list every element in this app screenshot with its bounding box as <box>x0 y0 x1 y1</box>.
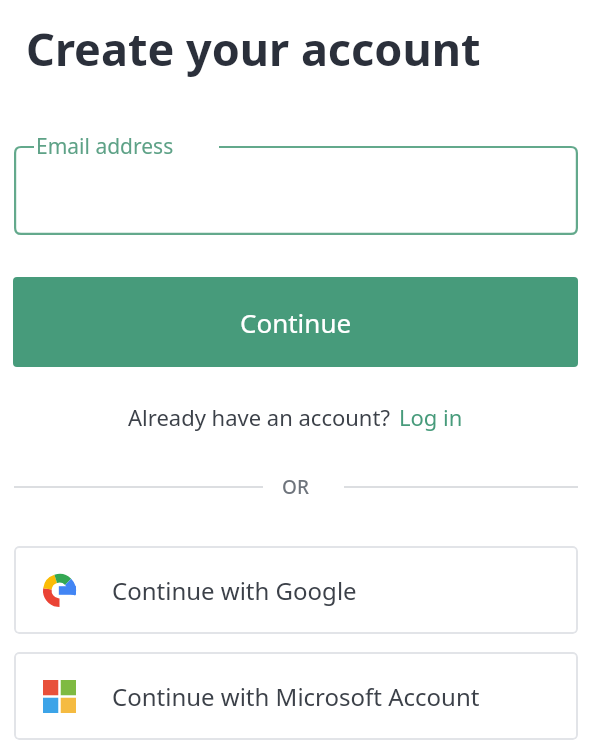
staticText: Email address <box>36 132 174 161</box>
button[interactable]: Email address <box>14 132 578 235</box>
staticText: Continue with Google <box>112 574 357 607</box>
button[interactable]: Continue <box>13 277 578 367</box>
button[interactable]: Microsoft logo <box>14 652 578 740</box>
other: Google logo <box>43 574 76 607</box>
button[interactable]: Google logo <box>14 546 578 634</box>
staticText: Continue with Microsoft Account <box>112 680 480 713</box>
staticText: Already have an account? <box>128 402 390 432</box>
other: Microsoft logo <box>43 680 76 713</box>
staticText: Continue <box>240 305 352 340</box>
staticText: Create your account <box>26 18 481 79</box>
staticText: OR <box>282 474 309 500</box>
staticText: Log in <box>399 402 463 432</box>
button[interactable]: Log in <box>399 402 463 432</box>
